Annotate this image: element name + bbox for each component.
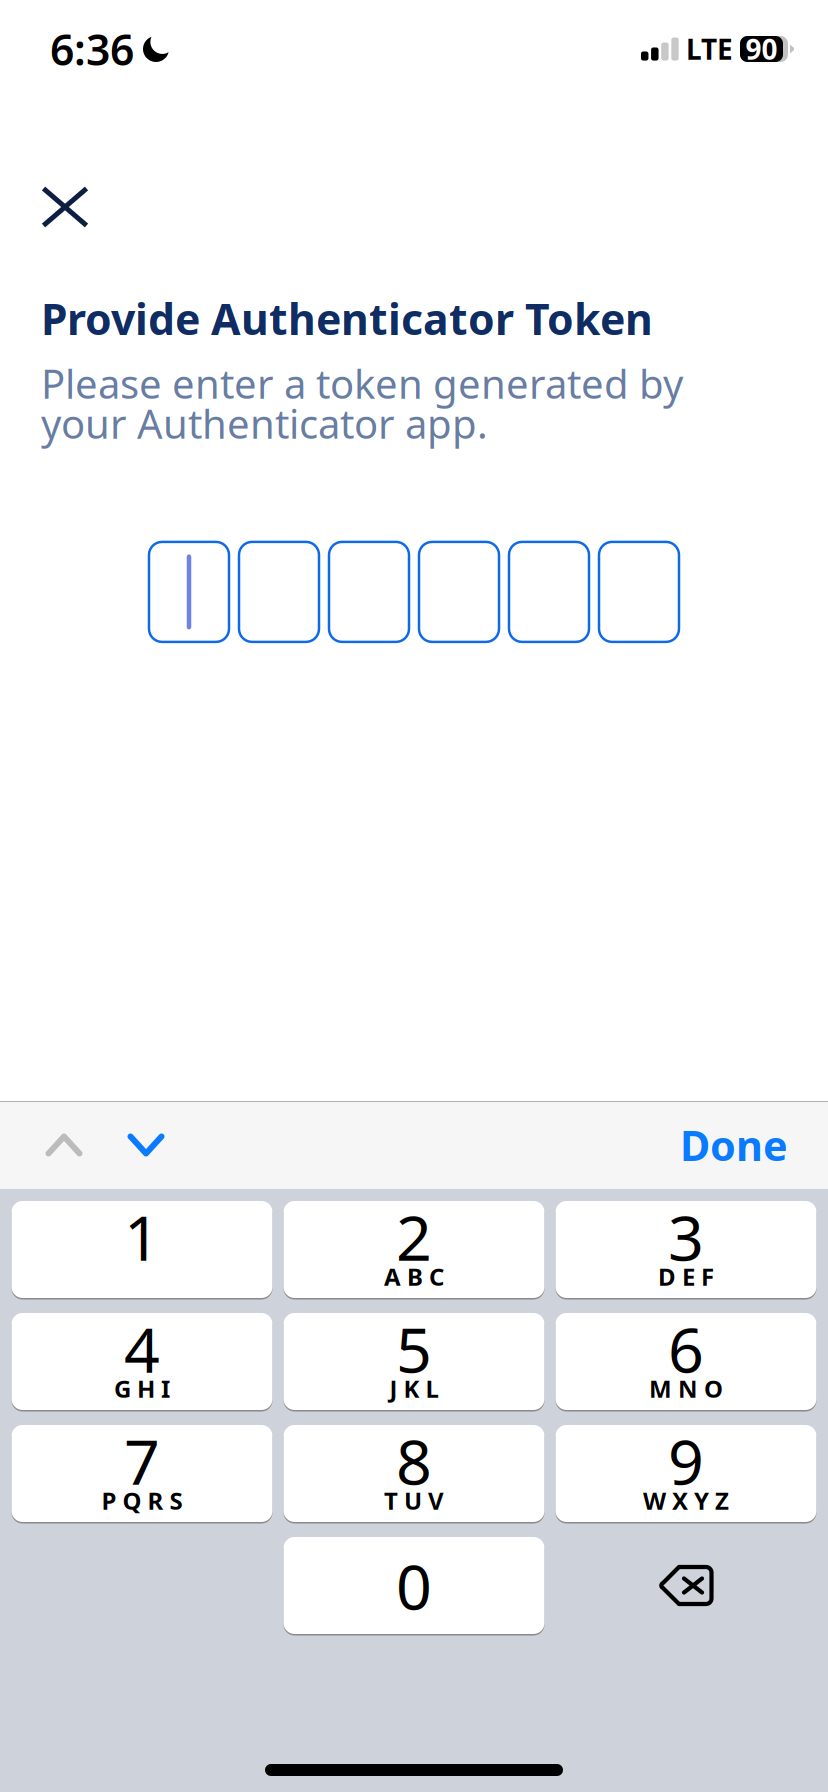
button[interactable]: 1 bbox=[11, 1201, 272, 1298]
staticText: Done bbox=[680, 1118, 788, 1172]
button[interactable]: 7 bbox=[11, 1425, 272, 1522]
staticText: A B C bbox=[384, 1261, 444, 1292]
button[interactable]: Done bbox=[660, 1101, 828, 1189]
staticText: 7 bbox=[124, 1419, 160, 1502]
button[interactable]: 8 bbox=[283, 1425, 544, 1522]
staticText: 90 bbox=[745, 30, 777, 68]
staticText: Provide Authenticator Token bbox=[41, 290, 653, 347]
staticText: Please enter a token generated by bbox=[41, 357, 683, 410]
staticText: T U V bbox=[384, 1485, 444, 1516]
staticText: 0 bbox=[396, 1544, 432, 1627]
button[interactable]: Previous field bbox=[20, 1101, 108, 1189]
button[interactable]: 3 bbox=[555, 1201, 816, 1298]
button[interactable]: 0 bbox=[283, 1537, 544, 1634]
staticText: J K L bbox=[389, 1373, 438, 1404]
button[interactable]: 4 bbox=[11, 1313, 272, 1410]
button[interactable]: Token digit bbox=[239, 542, 319, 642]
button[interactable]: Token digit bbox=[599, 542, 679, 642]
staticText: W X Y Z bbox=[643, 1485, 729, 1516]
staticText: 4 bbox=[124, 1307, 160, 1390]
staticText: M N O bbox=[649, 1373, 723, 1404]
button[interactable]: 2 bbox=[283, 1201, 544, 1298]
button[interactable]: 6 bbox=[555, 1313, 816, 1410]
staticText: P Q R S bbox=[101, 1485, 182, 1516]
staticText: your Authenticator app. bbox=[41, 397, 488, 450]
staticText: 8 bbox=[396, 1419, 432, 1502]
staticText: 6:36 bbox=[50, 21, 134, 77]
button[interactable]: Token digit bbox=[329, 542, 409, 642]
button[interactable]: Token digit bbox=[509, 542, 589, 642]
staticText: 3 bbox=[668, 1195, 704, 1278]
staticText: 5 bbox=[396, 1307, 432, 1390]
button[interactable]: 5 bbox=[283, 1313, 544, 1410]
staticText: 9 bbox=[668, 1419, 704, 1502]
button[interactable]: Token digit bbox=[149, 542, 229, 642]
staticText: 1 bbox=[124, 1195, 160, 1278]
staticText: G H I bbox=[114, 1373, 170, 1404]
button[interactable]: Delete bbox=[555, 1537, 816, 1634]
staticText: 6 bbox=[668, 1307, 704, 1390]
button[interactable]: Token digit bbox=[419, 542, 499, 642]
button[interactable]: Close bbox=[0, 172, 107, 242]
button[interactable]: Next field bbox=[108, 1101, 192, 1189]
staticText: D E F bbox=[658, 1261, 714, 1292]
button[interactable]: 9 bbox=[555, 1425, 816, 1522]
staticText: 2 bbox=[396, 1195, 432, 1278]
staticText: LTE bbox=[686, 30, 733, 68]
